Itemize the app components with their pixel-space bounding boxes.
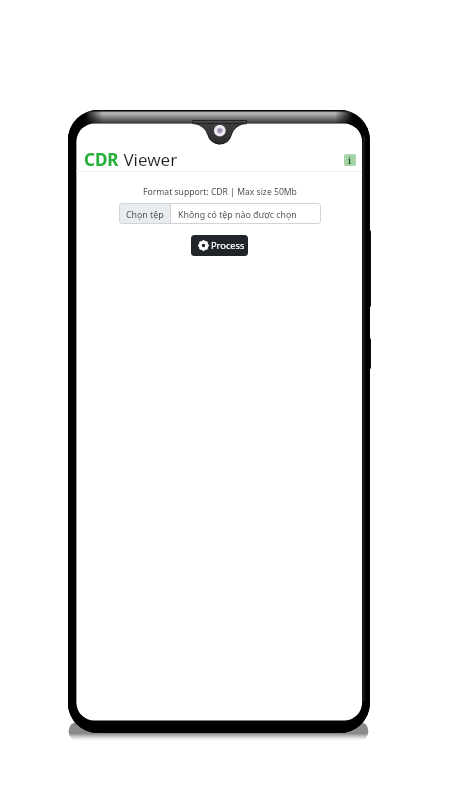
staticText: Chọn tệp [126,209,164,221]
staticText: i [348,154,352,166]
button[interactable]: Process [191,235,248,256]
button[interactable]: Info [344,154,356,166]
staticText: CDR [84,148,119,171]
staticText: Format support: CDR | Max size 50Mb [77,186,363,198]
staticText: Process [211,239,245,252]
button[interactable]: CDR [76,124,362,172]
button[interactable]: Chọn tệp [119,203,321,224]
staticText: Viewer [119,148,178,171]
staticText: Không có tệp nào được chọn [178,209,297,221]
